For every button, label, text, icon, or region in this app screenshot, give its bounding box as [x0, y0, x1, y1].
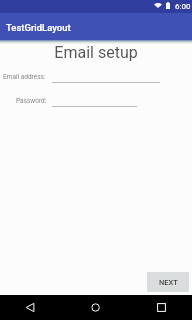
- staticText: Email address:: [3, 73, 46, 81]
- staticText: Email setup: [0, 43, 192, 62]
- button[interactable]: Home: [64, 295, 128, 320]
- staticText: NEXT: [159, 278, 178, 287]
- staticText: TestGridLayout: [6, 22, 71, 33]
- staticText: Password:: [16, 97, 47, 105]
- other: Wi-Fi: [154, 3, 162, 8]
- button[interactable]: NEXT: [147, 272, 189, 292]
- other: Battery: [166, 2, 170, 9]
- button[interactable]: Recent apps: [128, 295, 192, 320]
- staticText: 6:00: [175, 2, 191, 11]
- button[interactable]: Back: [0, 295, 64, 320]
